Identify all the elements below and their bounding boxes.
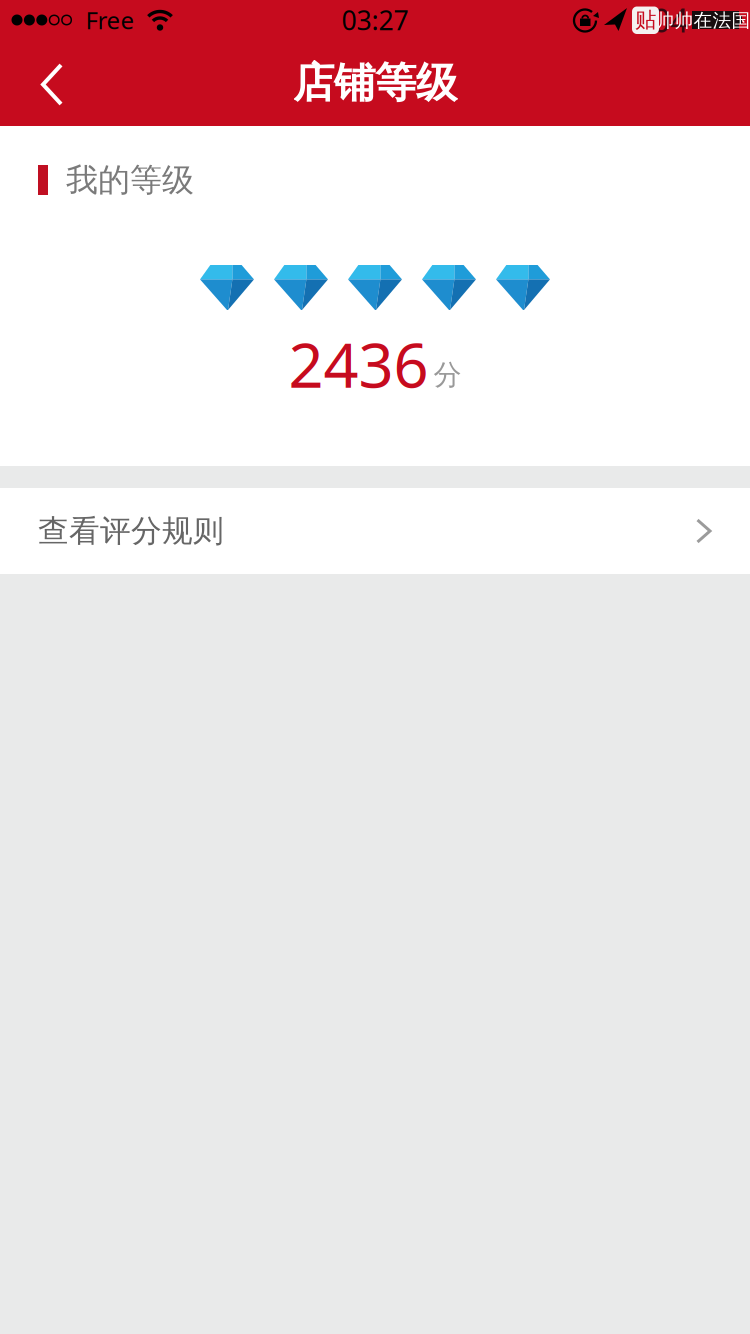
button[interactable]: Back <box>0 40 86 126</box>
staticText: 分 <box>433 358 461 392</box>
staticText: 贴 <box>635 7 656 33</box>
staticText: 查看评分规则 <box>38 512 224 550</box>
staticText: 03:27 <box>341 2 408 38</box>
staticText: 店铺等级 <box>293 58 457 108</box>
staticText: 我的等级 <box>66 160 194 200</box>
staticText: 704 <box>634 0 688 41</box>
button[interactable]: 查看评分规则 <box>0 488 750 574</box>
staticText: Free <box>85 4 134 36</box>
staticText: 帅帅在法国 <box>655 9 750 32</box>
staticText: 2436 <box>288 323 428 405</box>
